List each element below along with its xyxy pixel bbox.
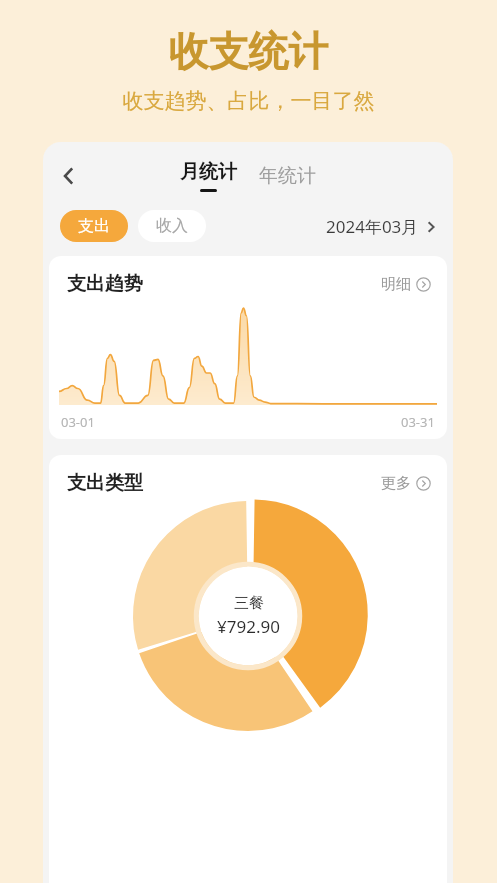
staticText: 三餐 — [234, 594, 264, 613]
staticText: 月统计 — [180, 160, 237, 184]
staticText: ¥792.90 — [217, 615, 280, 638]
staticText: 03-01 — [61, 413, 95, 431]
staticText: 更多 — [381, 474, 411, 493]
staticText: 收支统计 — [0, 26, 497, 76]
button[interactable]: Back — [51, 158, 87, 194]
staticText: 年统计 — [259, 164, 316, 188]
staticText: 03-31 — [401, 413, 435, 431]
button[interactable]: 支出趋势 — [49, 256, 447, 439]
button[interactable]: 支出类型 — [49, 455, 447, 883]
staticText: 2024年03月 — [326, 215, 419, 238]
button[interactable]: 支出 — [60, 210, 128, 242]
button[interactable]: 月统计 — [180, 160, 237, 192]
button[interactable]: 收入 — [138, 210, 206, 242]
staticText: 支出趋势 — [67, 272, 143, 296]
staticText: 支出 — [78, 216, 110, 236]
staticText: 明细 — [381, 275, 411, 294]
staticText: 支出类型 — [67, 471, 143, 495]
staticText: 收支趋势、占比，一目了然 — [0, 88, 497, 114]
staticText: 收入 — [156, 216, 188, 236]
button[interactable]: 更多 — [381, 474, 431, 493]
button[interactable]: 年统计 — [259, 164, 316, 188]
button[interactable]: 2024年03月 — [326, 215, 437, 238]
button[interactable]: 明细 — [381, 275, 431, 294]
